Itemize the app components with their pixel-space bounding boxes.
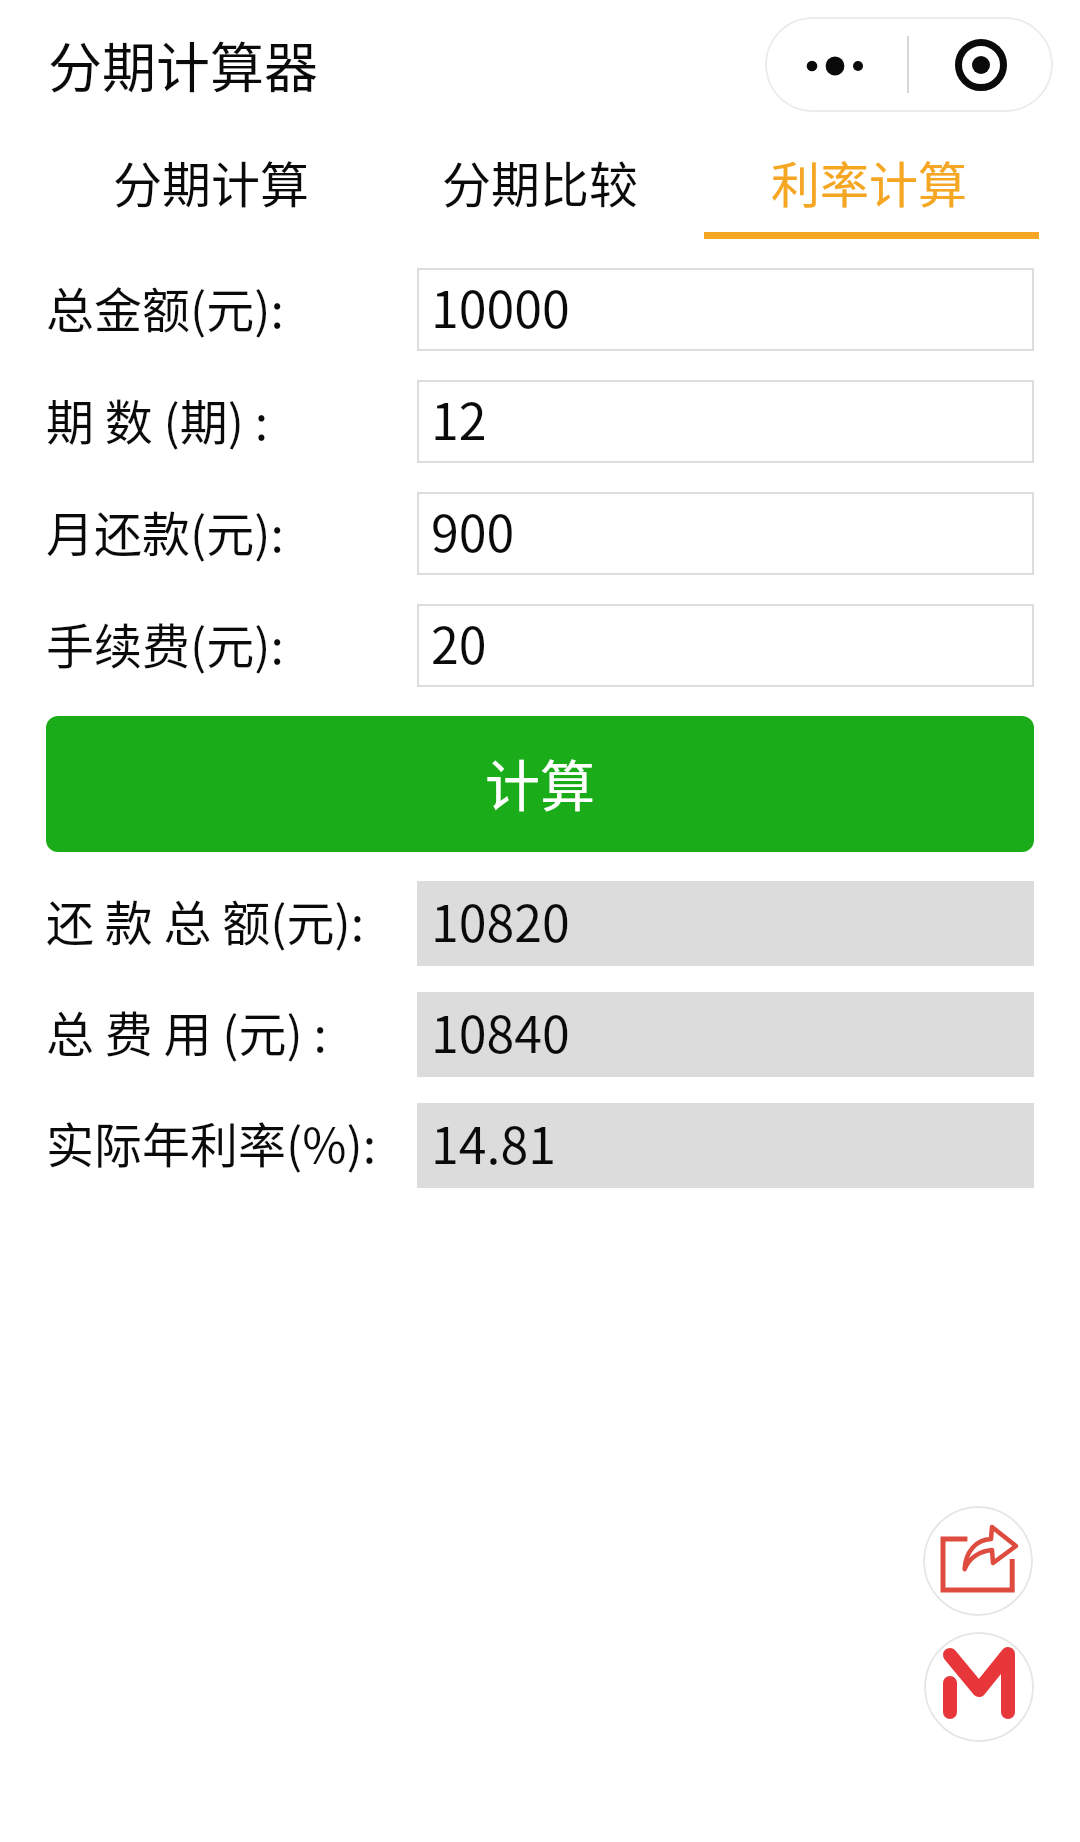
staticText: 利率计算: [771, 146, 968, 217]
staticText: 10840: [431, 995, 570, 1067]
button[interactable]: 利率计算: [705, 140, 1034, 232]
staticText: 期 数 (期) :: [46, 384, 269, 454]
staticText: 分期计算器: [48, 25, 318, 103]
staticText: 总金额(元):: [46, 272, 284, 342]
button[interactable]: 10000: [417, 268, 1034, 351]
staticText: 900: [431, 494, 515, 566]
staticText: 还 款 总 额(元):: [46, 885, 365, 955]
staticText: 计算: [485, 742, 596, 822]
staticText: 20: [431, 606, 487, 678]
staticText: 12: [431, 382, 487, 454]
staticText: 14.81: [431, 1106, 556, 1178]
button[interactable]: 900: [417, 492, 1034, 575]
button[interactable]: Send mail: [924, 1632, 1034, 1742]
staticText: 月还款(元):: [46, 496, 284, 566]
button[interactable]: Close mini program: [908, 17, 1053, 112]
button[interactable]: 分期比较: [376, 140, 705, 232]
staticText: 总 费 用 (元) :: [46, 996, 327, 1066]
button[interactable]: 20: [417, 604, 1034, 687]
staticText: 手续费(元):: [46, 608, 284, 678]
button[interactable]: Share: [923, 1506, 1033, 1616]
button[interactable]: 12: [417, 380, 1034, 463]
staticText: 10000: [431, 270, 570, 342]
staticText: 实际年利率(%):: [46, 1107, 377, 1177]
button[interactable]: 分期计算: [46, 140, 376, 232]
staticText: 分期比较: [442, 146, 639, 217]
staticText: 10820: [431, 884, 570, 956]
button[interactable]: 计算: [46, 716, 1034, 852]
staticText: 分期计算: [113, 146, 310, 217]
button[interactable]: More options: [765, 17, 908, 112]
